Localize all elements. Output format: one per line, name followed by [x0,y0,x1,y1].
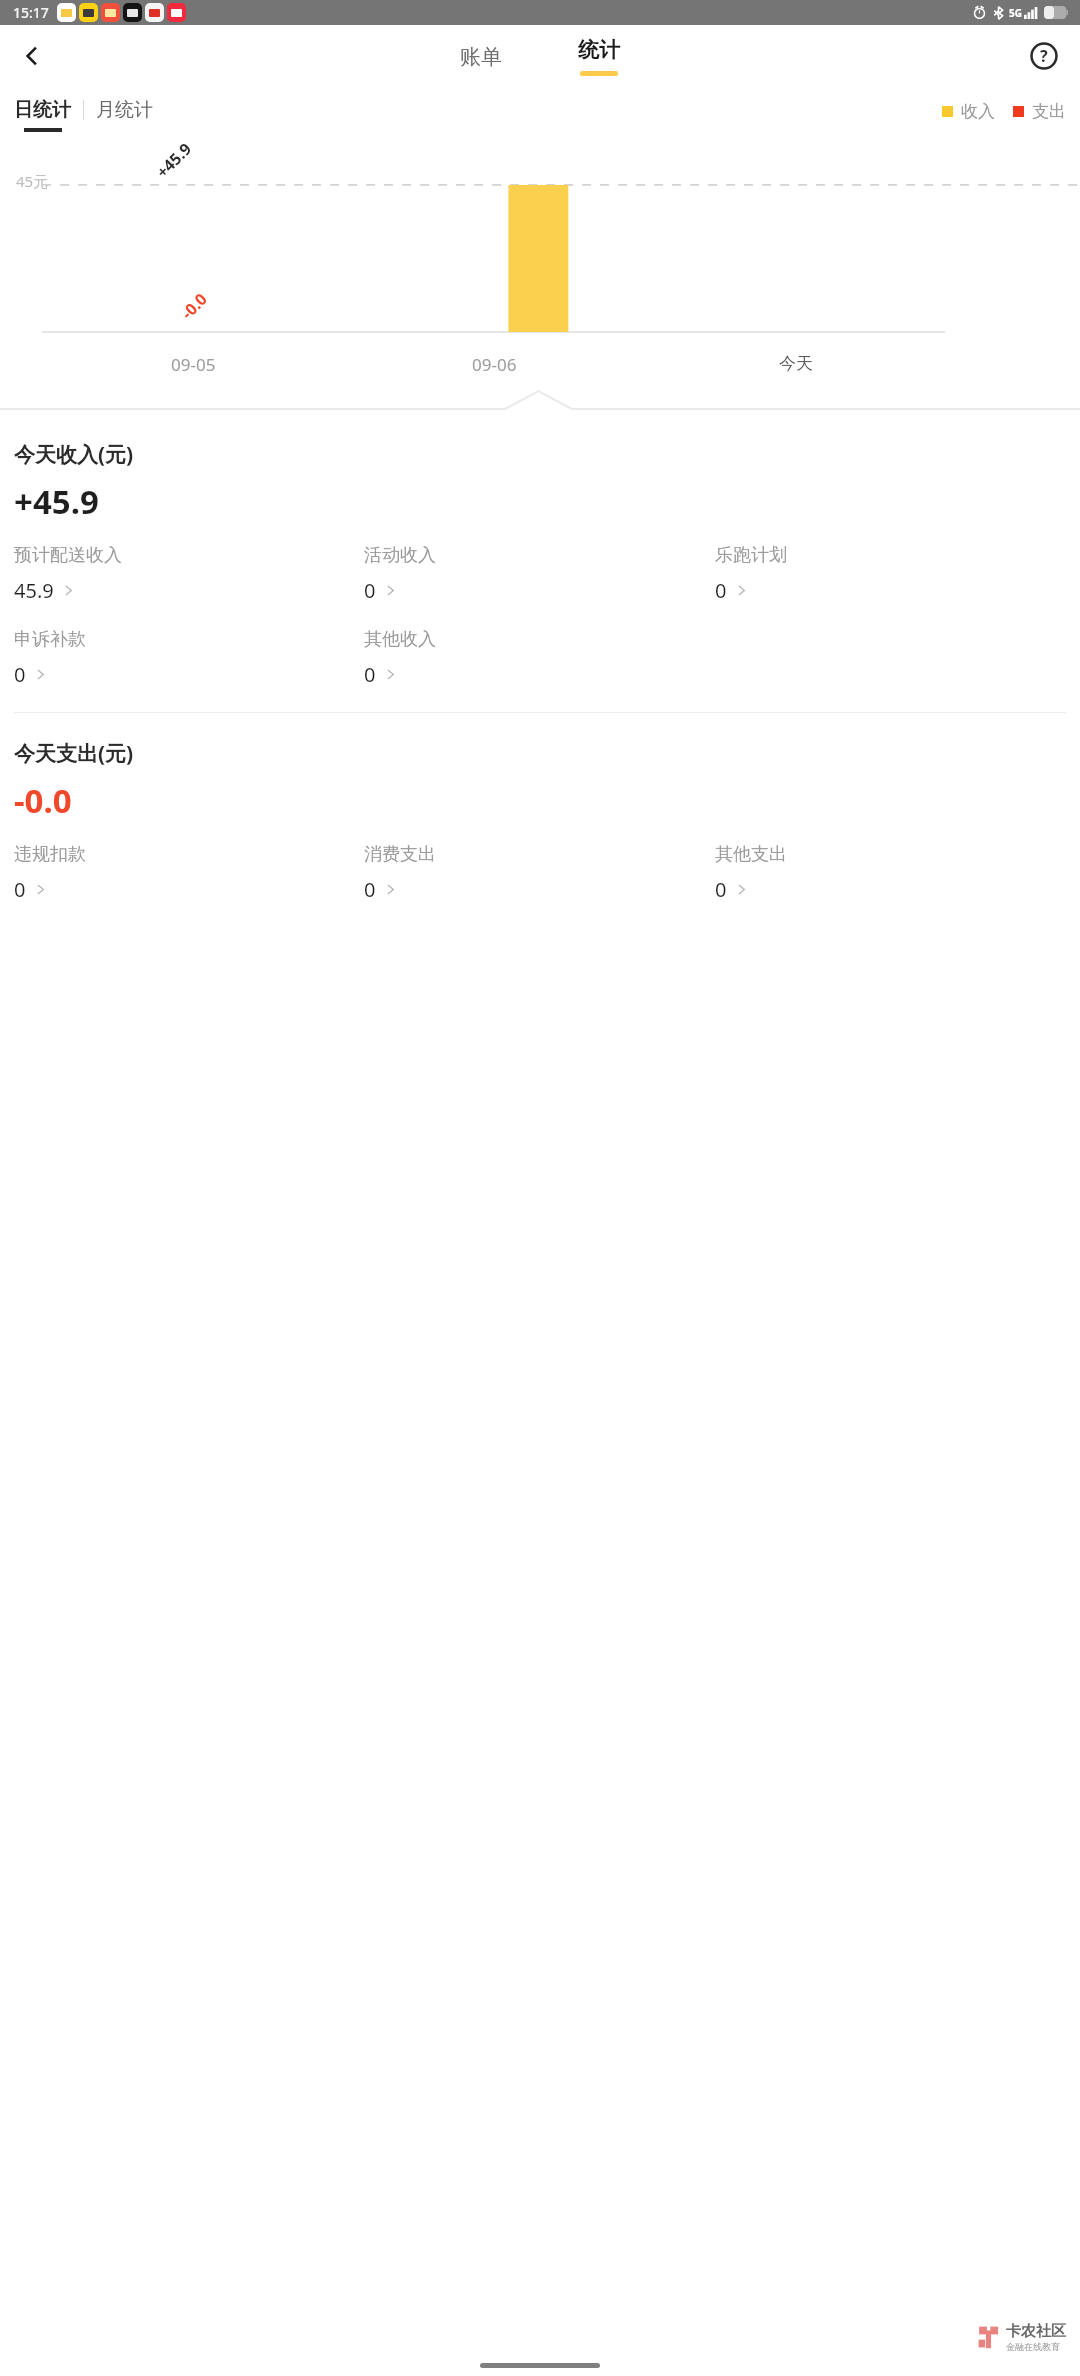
staticText: 月统计 [96,98,153,122]
staticText: 0 [364,876,376,903]
staticText: 预计配送收入 [14,544,122,567]
button[interactable]: 申诉补款 [14,628,364,688]
staticText: 统计 [578,37,620,63]
staticText: 0 [364,661,376,688]
staticText: 今天收入(元) [14,440,134,469]
button[interactable]: 其他支出 [715,843,1066,903]
staticText: 申诉补款 [14,628,86,651]
staticText: 收入 [961,101,995,122]
button[interactable]: Back [4,28,60,84]
staticText: 其他支出 [715,843,787,866]
staticText: 活动收入 [364,544,436,567]
staticText: 09-05 [171,353,216,376]
button[interactable]: 预计配送收入 [14,544,364,604]
staticText: 45元 [16,171,49,191]
staticText: 0 [715,577,727,604]
staticText: 0 [14,661,26,688]
staticText: 支出 [1032,101,1066,122]
button[interactable]: 账单 [460,44,502,70]
button[interactable]: 消费支出 [364,843,715,903]
staticText: 其他收入 [364,628,436,651]
button[interactable]: 月统计 [96,98,153,122]
staticText: 0 [14,876,26,903]
staticText: 金融在线教育 [1006,2341,1060,2352]
staticText: 15:17 [13,3,49,22]
staticText: -0.0 [14,778,72,823]
staticText: +45.9 [14,479,99,524]
button[interactable]: 日统计 [14,98,71,132]
staticText: 0 [715,876,727,903]
staticText: 今天支出(元) [14,739,134,768]
staticText: -0.0 [176,288,212,324]
staticText: 消费支出 [364,843,436,866]
staticText: 账单 [460,44,502,70]
staticText: 违规扣款 [14,843,86,866]
button[interactable]: 其他收入 [364,628,715,688]
staticText: 今天 [779,353,813,374]
button[interactable]: Help [1016,28,1072,84]
staticText: 乐跑计划 [715,544,787,567]
staticText: 45.9 [14,577,54,604]
staticText: 日统计 [14,98,71,122]
button[interactable]: 违规扣款 [14,843,364,903]
staticText: 卡农社区 [1006,2322,1066,2341]
staticText: 09-06 [472,353,517,376]
staticText: 0 [364,577,376,604]
button[interactable]: 统计 [578,37,620,76]
staticText: ? [1040,45,1048,67]
button[interactable]: 乐跑计划 [715,544,1066,604]
button[interactable]: 活动收入 [364,544,715,604]
staticText: 5G [1009,6,1022,20]
staticText: +45.9 [151,137,197,183]
